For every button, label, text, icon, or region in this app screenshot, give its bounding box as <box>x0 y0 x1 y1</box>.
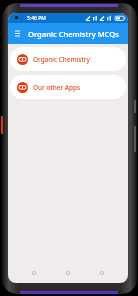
staticText: Our other Apps <box>33 83 80 92</box>
staticText: 5:46 PM <box>27 15 46 22</box>
button[interactable]: Recent apps <box>94 265 110 281</box>
staticText: Organic Chemistry MCQs <box>28 29 119 39</box>
button[interactable]: Our other Apps <box>10 75 126 99</box>
button[interactable]: Home <box>60 265 76 281</box>
button[interactable]: Back <box>26 265 42 281</box>
button[interactable]: Organic Chemistry <box>10 47 126 71</box>
staticText: Organic Chemistry <box>33 55 90 64</box>
button[interactable]: Open navigation menu <box>11 27 24 40</box>
